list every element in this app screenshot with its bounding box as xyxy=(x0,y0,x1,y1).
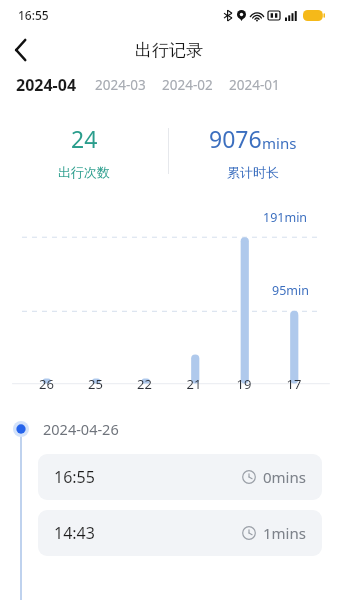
staticText: 26 xyxy=(22,375,71,393)
staticText: 出行记录 xyxy=(135,40,203,61)
staticText: 25 xyxy=(71,375,120,393)
staticText: 17 xyxy=(269,375,319,393)
button[interactable]: 16:55 xyxy=(38,454,322,500)
button[interactable]: 2024-01 xyxy=(223,76,286,94)
staticText: 14:43 xyxy=(54,522,95,544)
staticText: 22 xyxy=(120,375,169,393)
button[interactable]: Back xyxy=(0,30,42,70)
staticText: mins xyxy=(262,133,297,153)
staticText: 2024-04-26 xyxy=(43,419,119,439)
button[interactable]: 9076 xyxy=(169,112,337,190)
staticText: 2024-04 xyxy=(16,74,77,96)
staticText: 2024-02 xyxy=(162,76,213,94)
staticText: 1mins xyxy=(263,523,306,543)
button[interactable]: 2024-02 xyxy=(156,76,219,94)
staticText: 16:55 xyxy=(54,466,95,488)
button[interactable]: 24 xyxy=(0,112,168,190)
button[interactable]: 2024-03 xyxy=(89,76,152,94)
staticText: 24 xyxy=(71,123,98,154)
staticText: 0mins xyxy=(263,467,306,487)
staticText: 出行次数 xyxy=(58,164,110,180)
staticText: 16:55 xyxy=(18,7,49,23)
staticText: 9076 xyxy=(209,123,262,154)
staticText: 累计时长 xyxy=(227,164,279,180)
button[interactable]: 14:43 xyxy=(38,510,322,556)
staticText: 95min xyxy=(272,282,309,299)
button[interactable]: 2024-04 xyxy=(16,74,79,96)
staticText: 191min xyxy=(263,209,308,226)
staticText: 19 xyxy=(219,375,269,393)
staticText: 21 xyxy=(169,375,219,393)
staticText: 2024-01 xyxy=(229,76,280,94)
staticText: 2024-03 xyxy=(95,76,146,94)
